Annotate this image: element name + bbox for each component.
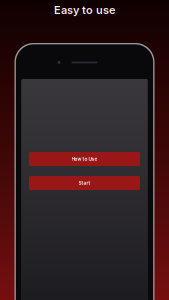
button[interactable]: How to Use <box>29 152 140 166</box>
staticText: Start <box>78 180 90 186</box>
staticText: Easy to use <box>54 3 115 17</box>
staticText: How to Use <box>71 156 97 162</box>
button[interactable]: Start <box>29 176 140 190</box>
